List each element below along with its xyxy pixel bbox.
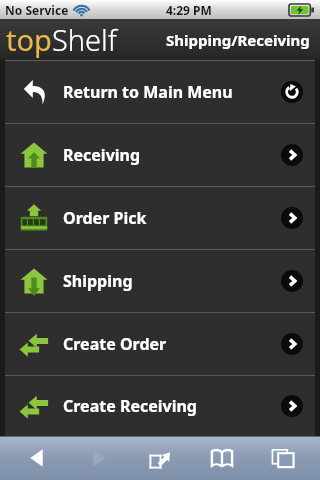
button[interactable]: Open	[281, 207, 303, 229]
staticText: Create Order	[63, 333, 167, 355]
button[interactable]: Create Order	[5, 313, 315, 375]
button[interactable]: Share	[137, 438, 183, 478]
button[interactable]: Tabs	[260, 438, 306, 478]
button[interactable]: Receiving	[5, 124, 315, 186]
staticText: Receiving	[63, 144, 141, 166]
staticText: Shipping/Receiving	[166, 30, 310, 50]
button[interactable]: Back	[14, 438, 60, 478]
button[interactable]: Open	[281, 144, 303, 166]
staticText: Return to Main Menu	[63, 81, 233, 103]
staticText: top	[6, 20, 52, 59]
button[interactable]: Shipping	[5, 250, 315, 312]
staticText: Order Pick	[63, 207, 147, 229]
button[interactable]: Open	[281, 395, 303, 417]
button[interactable]: Open	[281, 333, 303, 355]
button[interactable]: Create Receiving	[5, 376, 315, 436]
button[interactable]: Return to Main Menu	[5, 61, 315, 123]
staticText: Create Receiving	[63, 395, 197, 417]
staticText: Shipping	[63, 270, 133, 292]
button[interactable]: Forward	[76, 438, 122, 478]
staticText: 4:29 PM	[166, 2, 212, 18]
button[interactable]: Back	[281, 81, 303, 103]
staticText: No Service	[5, 2, 69, 18]
button[interactable]: Bookmarks	[199, 438, 245, 478]
button[interactable]: Open	[281, 270, 303, 292]
staticText: Shelf	[52, 20, 117, 59]
button[interactable]: Order Pick	[5, 187, 315, 249]
